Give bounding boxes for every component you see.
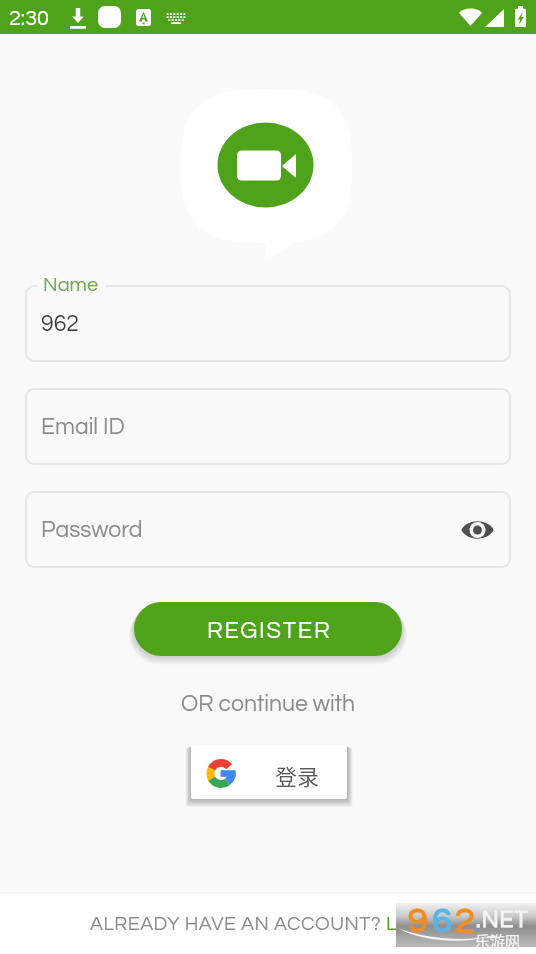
button[interactable]: ALREADY HAVE AN ACCOUNT? [0,894,536,954]
staticText: OR continue with [181,692,356,716]
button[interactable]: 登录 [191,745,347,799]
staticText: Password [41,518,143,542]
button[interactable] [25,491,511,568]
button[interactable] [25,285,511,362]
staticText: 2:30 [9,7,49,29]
staticText: REGISTER [207,619,332,643]
staticText: 962 [41,312,79,336]
button[interactable]: Show password [457,510,497,550]
staticText: 2 [455,902,475,939]
staticText: 9 [408,902,428,939]
staticText: Name [43,275,99,296]
staticText: ALREADY HAVE AN ACCOUNT? [90,914,386,934]
button[interactable] [25,388,511,465]
staticText: 乐游网 [475,930,521,952]
staticText: 6 [432,902,452,939]
staticText: .NET [476,908,529,932]
staticText: Email ID [41,415,125,439]
staticText: LOGIN [386,914,446,934]
staticText: 登录 [275,759,320,791]
button[interactable]: REGISTER [134,602,402,656]
